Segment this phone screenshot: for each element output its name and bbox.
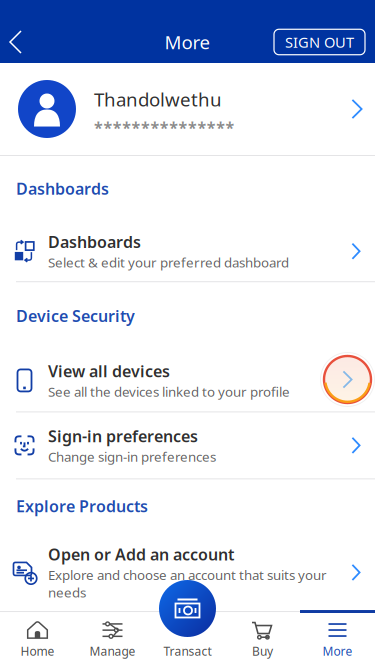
button[interactable]: Buy xyxy=(225,613,300,666)
staticText: Manage xyxy=(89,643,135,659)
staticText: Device Security xyxy=(16,305,135,326)
staticText: Dashboards xyxy=(16,178,109,199)
button[interactable]: SIGN OUT xyxy=(274,29,375,55)
staticText: More xyxy=(164,30,210,54)
staticText: Change sign-in preferences xyxy=(48,448,216,465)
button[interactable]: Home xyxy=(0,613,75,666)
staticText: See all the devices linked to your profi… xyxy=(48,383,290,400)
button[interactable]: Back xyxy=(0,26,38,58)
button[interactable]: More xyxy=(300,613,375,666)
staticText: Home xyxy=(20,643,54,659)
staticText: Explore and choose an account that suits… xyxy=(48,566,327,601)
staticText: Transact xyxy=(163,643,211,659)
staticText: SIGN OUT xyxy=(285,32,354,52)
staticText: View all devices xyxy=(48,360,170,382)
staticText: Sign-in preferences xyxy=(48,425,198,447)
staticText: Thandolwethu xyxy=(94,87,222,112)
staticText: *************** xyxy=(94,117,235,138)
button[interactable]: Manage xyxy=(75,613,150,666)
staticText: Open or Add an account xyxy=(48,544,234,565)
button[interactable]: Dashboards xyxy=(0,221,375,281)
staticText: More xyxy=(322,643,352,659)
button[interactable]: View all devices xyxy=(0,349,375,411)
button[interactable]: Thandolwethu xyxy=(0,63,375,155)
staticText: Dashboards xyxy=(48,231,141,252)
button[interactable]: Sign-in preferences xyxy=(0,412,375,478)
staticText: Select & edit your preferred dashboard xyxy=(48,253,289,271)
staticText: Explore Products xyxy=(16,495,148,517)
staticText: Buy xyxy=(252,643,273,659)
button[interactable]: Transact xyxy=(159,580,216,637)
button[interactable]: Open or Add an account xyxy=(0,537,375,608)
button[interactable]: Transact xyxy=(150,613,225,666)
